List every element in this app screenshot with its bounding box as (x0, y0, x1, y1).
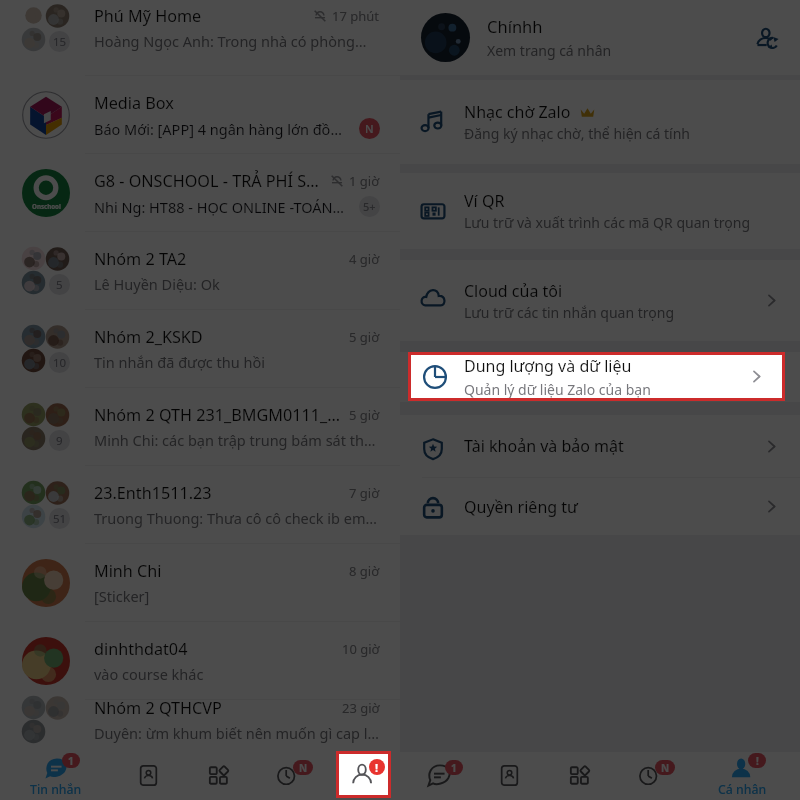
button[interactable]: Discover (545, 752, 615, 800)
staticText: Minh Chi: các bạn trập trung bám sát the… (94, 430, 380, 450)
staticText: Lưu trữ các tin nhắn quan trọng (464, 303, 675, 322)
staticText: dinhthdat04 (94, 638, 188, 660)
staticText: 1 (68, 754, 74, 768)
button[interactable]: Nhóm 2 QTHCVP (0, 700, 400, 752)
staticText: 10 (53, 355, 67, 371)
button[interactable]: 51 (0, 466, 400, 544)
button[interactable]: Dung lượng và dữ liệu (400, 352, 800, 402)
staticText: Dung lượng và dữ liệu (464, 356, 632, 378)
staticText: 1 (451, 761, 457, 775)
staticText: Nhóm 2 QTHCVP (94, 697, 222, 719)
button[interactable]: Ví QR (400, 173, 800, 249)
staticText: Hoàng Ngọc Anh: Trong nhà có phòng… (94, 31, 367, 51)
staticText: 51 (53, 511, 67, 527)
staticText: Ví QR (464, 190, 505, 212)
staticText: Tài khoản và bảo mật (464, 435, 624, 457)
button[interactable]: 1 (21, 752, 91, 800)
staticText: 9 (56, 433, 63, 449)
staticText: Onschool (32, 202, 61, 210)
staticText: Media Box (94, 92, 174, 114)
staticText: 5 (56, 277, 63, 293)
button[interactable]: Media Box (0, 76, 400, 154)
staticText: Duyên: ừm khum biết nên muốn gì cap lạ… (94, 723, 380, 743)
staticText: [Sticker] (94, 586, 150, 606)
button[interactable]: 10 (0, 310, 400, 388)
button[interactable]: 9 (0, 388, 400, 466)
staticText: 7 giờ (349, 484, 380, 502)
button[interactable]: Timeline (253, 752, 323, 800)
button[interactable]: Discover (184, 752, 254, 800)
staticText: Quyền riêng tư (464, 496, 578, 518)
staticText: Nhóm 2_KSKD (94, 326, 203, 348)
button[interactable]: Messages (404, 752, 474, 800)
button[interactable]: Cloud của tôi (400, 260, 800, 341)
staticText: Cloud của tôi (464, 280, 563, 302)
staticText: Quản lý dữ liệu Zalo của bạn (464, 379, 651, 398)
staticText: 17 phút (332, 7, 380, 25)
staticText: 5 giờ (349, 406, 380, 424)
button[interactable]: Contacts (474, 752, 544, 800)
staticText: Nhóm 2 TA2 (94, 248, 187, 270)
staticText: ! (756, 754, 759, 768)
button[interactable]: Dung lượng và dữ liệu (411, 355, 782, 398)
staticText: 5 giờ (349, 328, 380, 346)
staticText: 15 (53, 34, 67, 50)
staticText: Minh Chi (94, 560, 162, 582)
staticText: Báo Mới: [APP] 4 ngân hàng lớn đồng… (94, 119, 349, 139)
button[interactable]: Nhạc chờ Zalo (400, 80, 800, 164)
staticText: Nhóm 2 QTH 231_BMGM0111_14 (94, 404, 344, 426)
staticText: N (661, 761, 670, 775)
staticText: Truong Thuong: Thưa cô cô check ib em… (94, 508, 377, 528)
staticText: G8 - ONSCHOOL - TRẢ PHÍ S… (94, 170, 319, 192)
button[interactable]: 15 (0, 0, 400, 76)
button[interactable]: Quyền riêng tư (400, 478, 800, 535)
button[interactable]: 5 (0, 232, 400, 310)
staticText: 8 giờ (349, 562, 380, 580)
staticText: 10 giờ (342, 640, 380, 658)
button[interactable]: ! (707, 752, 777, 800)
staticText: Phú Mỹ Home (94, 5, 202, 27)
button[interactable]: dinhthdat04 (0, 622, 400, 700)
button[interactable]: Switch account (753, 23, 783, 53)
staticText: Nhi Ng: HT88 - HỌC ONLINE -TOÁN… (94, 197, 345, 217)
button[interactable]: Minh Chi (0, 544, 400, 622)
staticText: ! (375, 760, 379, 775)
staticText: Dung lượng và dữ liệu (464, 355, 632, 377)
staticText: vào course khác (94, 664, 204, 684)
staticText: N (365, 121, 374, 136)
staticText: Nhạc chờ Zalo (464, 101, 571, 123)
staticText: Quản lý dữ liệu Zalo của bạn (464, 380, 651, 398)
staticText: 4 giờ (349, 250, 380, 268)
staticText: Đăng ký nhạc chờ, thể hiện cá tính (464, 124, 691, 143)
button[interactable]: Tài khoản và bảo mật (400, 415, 800, 477)
staticText: Lưu trữ và xuất trình các mã QR quan trọ… (464, 213, 751, 232)
staticText: Lê Huyền Diệu: Ok (94, 274, 220, 294)
button[interactable]: Profile (339, 754, 388, 795)
button[interactable]: Profile (327, 752, 397, 800)
staticText: N (299, 761, 308, 775)
button[interactable]: Timeline (615, 752, 685, 800)
staticText: Xem trang cá nhân (487, 41, 612, 60)
staticText: Tin nhắn (30, 781, 82, 798)
button[interactable]: Onschool (0, 154, 400, 232)
button[interactable]: Chínhh (400, 0, 800, 75)
staticText: ! (376, 761, 379, 775)
staticText: 1 giờ (349, 172, 380, 190)
staticText: Chínhh (487, 15, 543, 37)
staticText: Tin nhắn đã được thu hồi (94, 352, 265, 372)
staticText: 23.Enth1511.23 (94, 482, 212, 504)
staticText: 23 giờ (342, 699, 380, 717)
staticText: Cá nhân (718, 781, 767, 798)
staticText: 5+ (363, 199, 376, 214)
button[interactable]: Contacts (113, 752, 183, 800)
